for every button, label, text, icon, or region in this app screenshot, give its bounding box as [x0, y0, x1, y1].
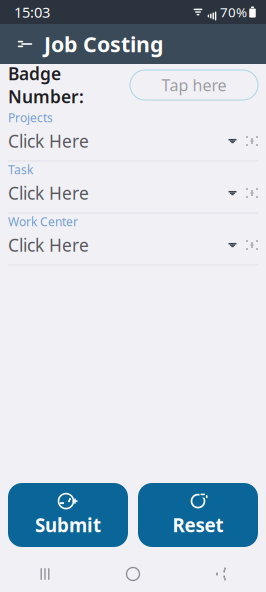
staticText: Work Center — [8, 214, 78, 229]
button[interactable]: Back — [177, 556, 265, 592]
staticText: Submit — [35, 513, 101, 537]
staticText: Badge Number: — [8, 62, 84, 108]
button[interactable]: Projects — [0, 106, 266, 158]
staticText: Projects — [8, 110, 53, 125]
button[interactable]: Reset — [138, 483, 258, 547]
staticText: Job Costing — [44, 30, 163, 58]
button[interactable]: Recent apps — [1, 556, 89, 592]
staticText: Click Here — [8, 130, 89, 153]
button[interactable]: Task — [0, 158, 266, 210]
staticText: Tap here — [161, 74, 226, 96]
staticText: Reset — [172, 513, 223, 537]
button[interactable]: Tap here — [130, 70, 258, 100]
staticText: 15:03 — [14, 2, 50, 22]
button[interactable]: Submit — [8, 483, 128, 547]
staticText: 70% — [220, 3, 247, 21]
button[interactable]: Home — [89, 556, 177, 592]
staticText: Task — [8, 162, 33, 177]
staticText: Click Here — [8, 182, 89, 205]
staticText: Click Here — [8, 234, 89, 257]
button[interactable]: Work Center — [0, 210, 266, 262]
button[interactable]: Back — [6, 24, 44, 64]
